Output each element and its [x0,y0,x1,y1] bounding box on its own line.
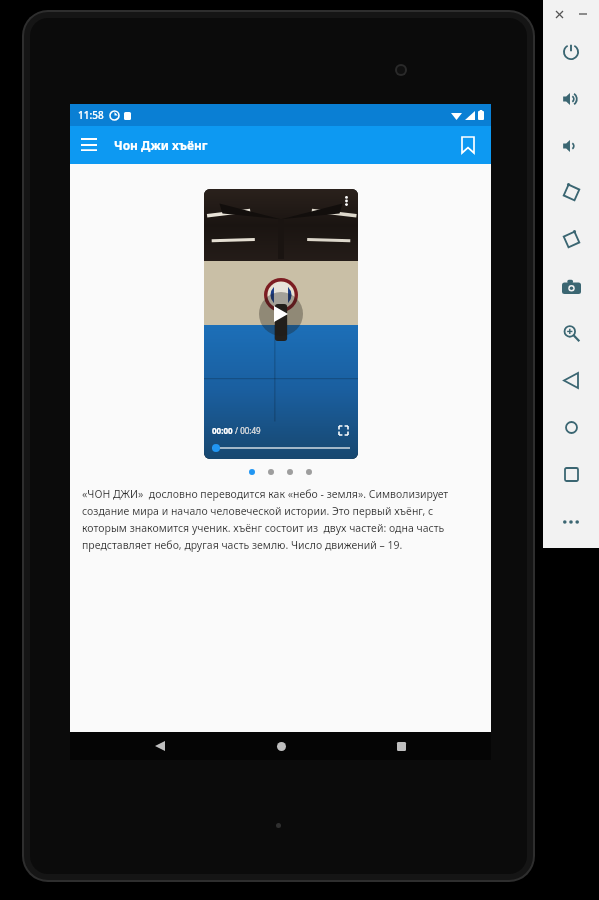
button[interactable]: Home [543,404,599,451]
staticText: 00:00 [212,425,233,436]
button[interactable]: Back [543,357,599,404]
button[interactable]: More options [338,193,354,209]
staticText: «ЧОН ДЖИ» дословно переводится как «небо… [82,487,479,552]
button[interactable]: Minimize [574,5,592,23]
button[interactable]: More [543,498,599,545]
button[interactable]: Play video [204,189,358,459]
button[interactable]: Fullscreen [336,423,350,437]
button[interactable]: Bookmark [449,126,487,164]
staticText: Чон Джи хъёнг [114,137,208,153]
button[interactable]: Take screenshot [543,263,599,310]
button[interactable]: Rotate right [543,216,599,263]
button[interactable]: Power [543,28,599,75]
button[interactable]: Back [130,732,190,760]
button[interactable]: Home [251,732,311,760]
staticText: 11:58 [78,108,104,122]
button[interactable]: Volume up [543,75,599,122]
button[interactable]: Volume down [543,122,599,169]
button[interactable]: Close [550,5,568,23]
staticText: / 00:49 [233,425,261,436]
button[interactable]: Rotate left [543,169,599,216]
button[interactable]: Recent apps [371,732,431,760]
button[interactable]: Open navigation menu [70,126,108,164]
button[interactable]: Overview [543,451,599,498]
button[interactable]: Zoom [543,310,599,357]
